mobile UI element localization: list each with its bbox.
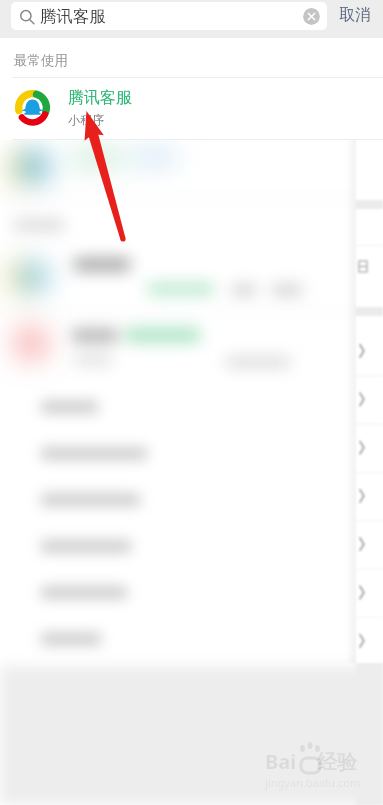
staticText: Bai 经验: [265, 748, 358, 775]
staticText: jingyan.baidu.com: [265, 775, 361, 790]
staticText: 最常使用: [14, 52, 68, 69]
staticText: 腾讯客服: [40, 6, 106, 27]
button[interactable]: 腾讯客服: [11, 2, 327, 30]
staticText: 腾讯客服: [68, 88, 132, 108]
button[interactable]: 取消: [327, 0, 383, 30]
button[interactable]: Clear text: [303, 8, 320, 25]
staticText: 取消: [339, 5, 371, 25]
button[interactable]: 腾讯客服: [0, 82, 383, 132]
staticText: 小程序: [68, 112, 104, 127]
